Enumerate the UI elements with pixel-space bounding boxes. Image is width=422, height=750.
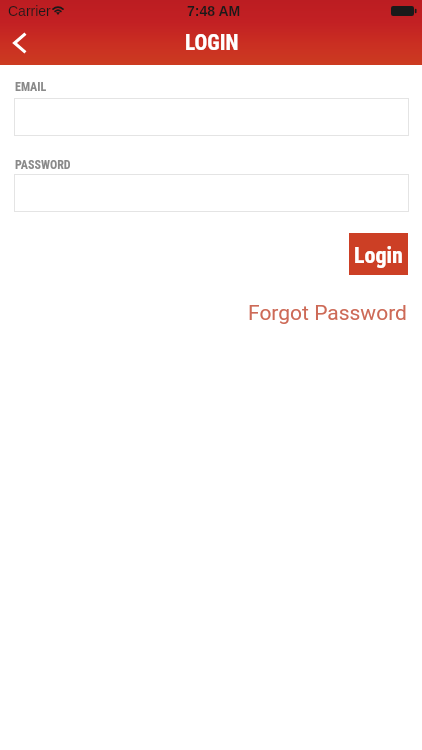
staticText: EMAIL [15,80,47,94]
staticText: LOGIN [185,30,239,55]
staticText: 7:48 AM [187,3,241,19]
button[interactable] [14,98,409,136]
staticText: Forgot Password [248,301,407,326]
button[interactable]: Login [349,233,408,275]
button[interactable]: Forgot Password [248,301,407,326]
staticText: PASSWORD [15,158,71,172]
button[interactable]: Back [0,21,44,65]
staticText: Login [354,243,403,269]
staticText: Carrier [8,3,51,19]
button[interactable] [14,174,409,212]
